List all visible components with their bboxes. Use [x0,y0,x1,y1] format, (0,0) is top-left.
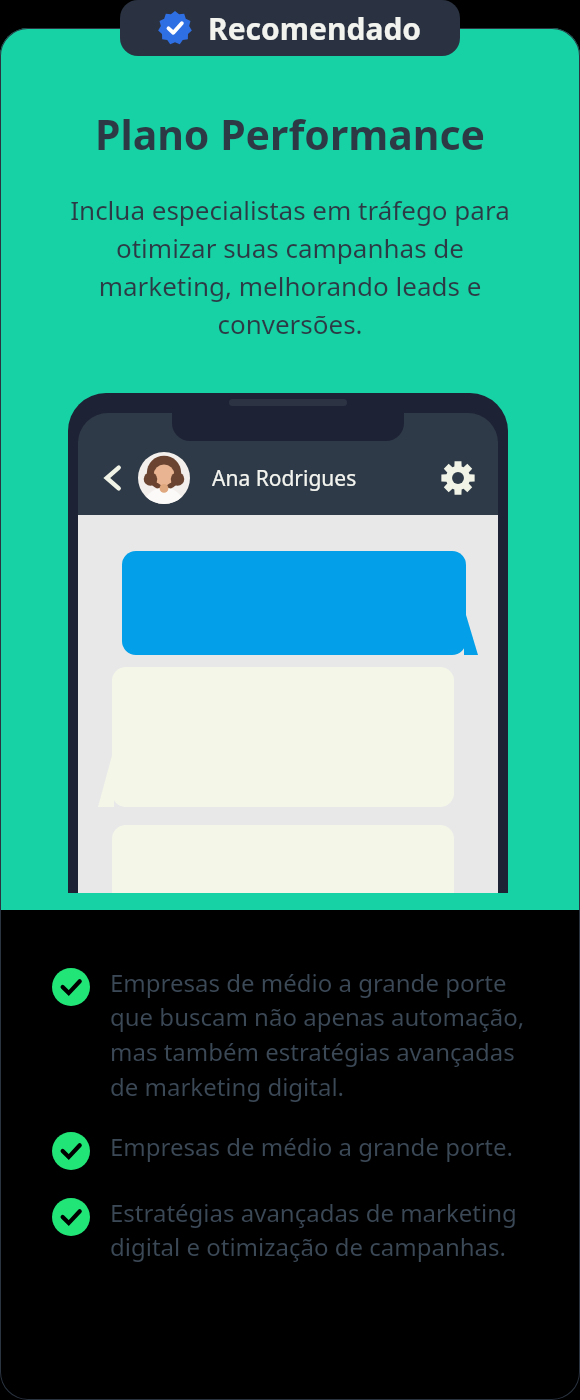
button[interactable]: Estratégias avançadas de marketing digit… [52,1196,540,1264]
button[interactable]: Voltar [96,461,130,495]
button[interactable]: Foto de Ana Rodrigues [138,452,190,504]
staticText: Ana Rodrigues [212,464,357,493]
staticText: Inclua especialistas em tráfego para oti… [48,192,532,341]
button[interactable]: Configurações [436,456,480,500]
staticText: Recomendado [208,8,422,49]
button[interactable]: Recomendado [120,0,460,56]
staticText: Plano Performance [0,106,580,162]
button[interactable]: Empresas de médio a grande porte que bus… [52,966,540,1104]
staticText: Estratégias avançadas de marketing digit… [110,1196,540,1264]
button[interactable]: Empresas de médio a grande porte. [52,1130,540,1170]
staticText: Empresas de médio a grande porte. [110,1130,513,1163]
staticText: Empresas de médio a grande porte que bus… [110,966,540,1104]
